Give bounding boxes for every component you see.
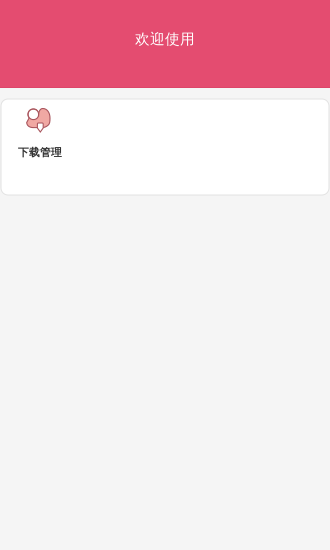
staticText: 欢迎使用 <box>135 30 195 48</box>
button[interactable]: 下载管理 <box>1 99 329 195</box>
staticText: 下载管理 <box>18 146 62 159</box>
